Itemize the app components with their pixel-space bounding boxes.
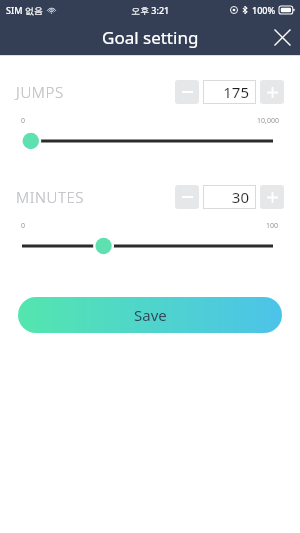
staticText: 100 (266, 221, 279, 231)
staticText: 0 (21, 116, 26, 126)
button[interactable]: 175 (203, 80, 256, 104)
staticText: 175 (223, 82, 249, 102)
button[interactable]: Decrease MINUTES (175, 185, 199, 209)
button[interactable]: Increase MINUTES (260, 185, 284, 209)
staticText: 10,000 (257, 116, 279, 126)
staticText: 100% (252, 4, 276, 16)
staticText: Goal setting (102, 26, 199, 49)
button[interactable]: Close (265, 20, 300, 55)
staticText: SIM 없음 (6, 4, 43, 16)
button[interactable]: 30 (203, 185, 256, 209)
button[interactable]: Slider (0, 235, 300, 257)
staticText: 오후 3:21 (131, 4, 170, 16)
button[interactable]: Slider (0, 130, 300, 152)
staticText: 0 (21, 221, 26, 231)
staticText: JUMPS (16, 82, 64, 102)
staticText: 30 (231, 187, 249, 207)
button[interactable]: Save (18, 297, 282, 333)
button[interactable]: Increase JUMPS (260, 80, 284, 104)
button[interactable]: Decrease JUMPS (175, 80, 199, 104)
staticText: MINUTES (16, 187, 85, 207)
staticText: Save (134, 305, 167, 325)
